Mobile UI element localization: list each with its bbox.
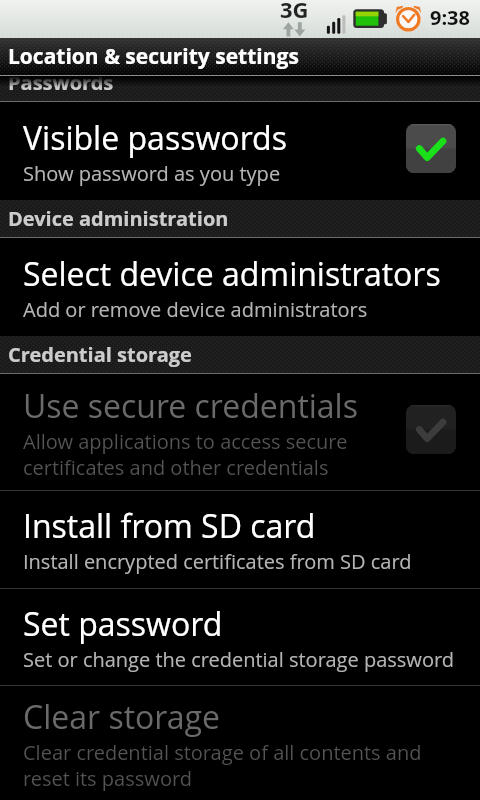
- staticText: Set password: [23, 602, 223, 646]
- staticText: Passwords: [8, 76, 114, 96]
- button[interactable]: Visible passwords: [0, 102, 480, 200]
- button[interactable]: Checked: [406, 405, 456, 454]
- staticText: Clear storage: [23, 695, 220, 739]
- staticText: 9:38: [430, 4, 470, 31]
- staticText: Visible passwords: [23, 116, 287, 160]
- button[interactable]: Select device administrators: [0, 238, 480, 336]
- button[interactable]: Set password: [0, 589, 480, 685]
- staticText: Use secure credentials: [23, 384, 358, 428]
- staticText: Add or remove device administrators: [23, 296, 368, 323]
- staticText: Show password as you type: [23, 160, 281, 187]
- staticText: Credential storage: [8, 341, 192, 368]
- button[interactable]: Install from SD card: [0, 491, 480, 588]
- staticText: Install encrypted certificates from SD c…: [23, 548, 412, 575]
- button[interactable]: Checked: [406, 124, 456, 173]
- button[interactable]: Clear storage: [0, 686, 480, 800]
- staticText: Device administration: [8, 205, 229, 232]
- staticText: Allow applications to access secure cert…: [23, 428, 398, 480]
- staticText: Select device administrators: [23, 252, 441, 296]
- staticText: 3G: [280, 0, 309, 24]
- button[interactable]: Use secure credentials: [0, 374, 480, 490]
- staticText: Clear credential storage of all contents…: [23, 739, 472, 791]
- staticText: Location & security settings: [8, 42, 299, 71]
- staticText: Install from SD card: [23, 504, 316, 548]
- staticText: Set or change the credential storage pas…: [23, 646, 455, 673]
